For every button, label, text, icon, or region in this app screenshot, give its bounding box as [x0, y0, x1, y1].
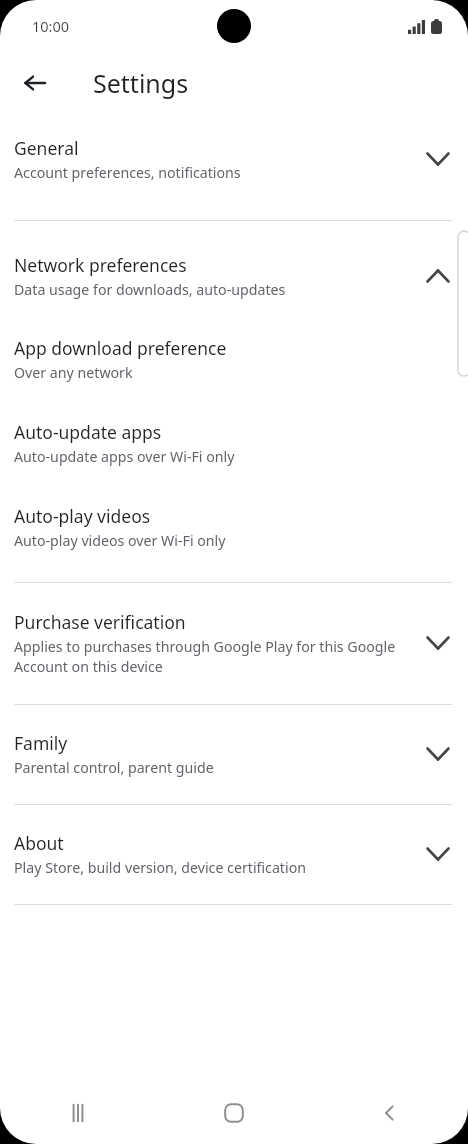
button[interactable]: Auto-play videos [0, 504, 468, 550]
button[interactable]: Home [156, 1082, 312, 1144]
button[interactable]: General [0, 136, 468, 182]
staticText: Auto-update apps over Wi-Fi only [14, 447, 235, 466]
staticText: Auto-update apps [14, 420, 162, 444]
staticText: Parental control, parent guide [14, 758, 214, 777]
staticText: Data usage for downloads, auto-updates [14, 280, 286, 299]
staticText: App download preference [14, 336, 227, 360]
button[interactable]: Recents [0, 1082, 156, 1144]
staticText: Account preferences, notifications [14, 163, 241, 182]
staticText: Purchase verification [14, 610, 186, 634]
staticText: Settings [93, 66, 189, 100]
button[interactable]: Auto-update apps [0, 420, 468, 466]
button[interactable]: Back [312, 1082, 468, 1144]
button[interactable]: App download preference [0, 336, 468, 382]
staticText: Auto-play videos [14, 504, 151, 528]
button[interactable]: Network preferences [0, 253, 468, 299]
staticText: Auto-play videos over Wi-Fi only [14, 531, 226, 550]
staticText: Family [14, 731, 68, 755]
button[interactable]: About [0, 831, 468, 877]
staticText: General [14, 136, 79, 160]
staticText: About [14, 831, 64, 855]
staticText: 10:00 [32, 16, 70, 36]
button[interactable]: Back [11, 59, 59, 107]
button[interactable]: Family [0, 731, 468, 777]
button[interactable]: Purchase verification [0, 610, 468, 676]
staticText: Over any network [14, 363, 133, 382]
staticText: Network preferences [14, 253, 187, 277]
staticText: Play Store, build version, device certif… [14, 858, 306, 877]
staticText: Applies to purchases through Google Play… [14, 637, 412, 676]
